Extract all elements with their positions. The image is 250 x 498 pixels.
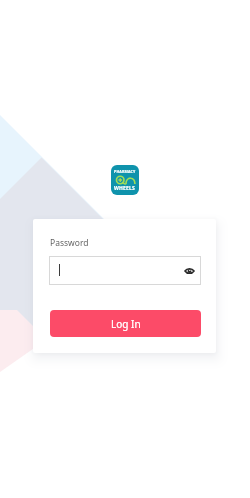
button[interactable]: Log In bbox=[50, 310, 201, 337]
staticText: Password bbox=[50, 237, 89, 249]
staticText: PHARMACY bbox=[114, 169, 136, 174]
staticText: Log In bbox=[111, 317, 141, 331]
button[interactable]: Show password bbox=[184, 265, 195, 276]
staticText: WHEELS bbox=[114, 185, 136, 192]
button[interactable]: Show password bbox=[49, 256, 201, 285]
